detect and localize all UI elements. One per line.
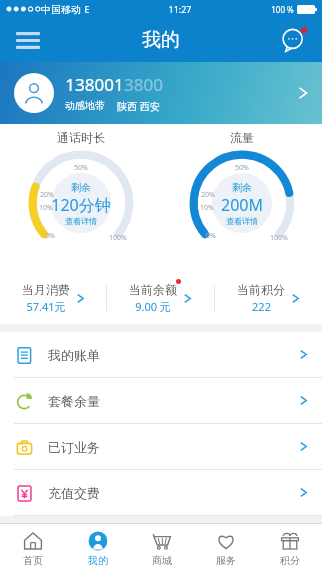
button[interactable]: Menu bbox=[8, 20, 48, 60]
staticText: 流量 bbox=[230, 130, 254, 145]
button[interactable]: 套餐余量 bbox=[0, 378, 322, 423]
staticText: 100% bbox=[270, 233, 288, 243]
button[interactable]: 积分 bbox=[258, 524, 322, 572]
staticText: 100 % bbox=[271, 4, 294, 15]
staticText: 套餐余量 bbox=[48, 393, 100, 409]
staticText: 充值交费 bbox=[48, 485, 100, 501]
staticText: 11:27 bbox=[168, 3, 192, 15]
staticText: 通话时长 bbox=[57, 130, 105, 145]
button[interactable]: 首页 bbox=[0, 524, 65, 572]
staticText: 查看详情 bbox=[65, 216, 97, 226]
button[interactable]: 服务 bbox=[194, 524, 258, 572]
staticText: 20% bbox=[40, 190, 54, 200]
staticText: 中国移动 bbox=[41, 3, 81, 16]
staticText: 57.41元 bbox=[26, 299, 66, 314]
staticText: 当前积分 bbox=[237, 282, 285, 297]
staticText: 138001 bbox=[65, 73, 124, 96]
staticText: 120分钟 bbox=[51, 194, 111, 216]
staticText: 20% bbox=[201, 190, 215, 200]
staticText: 0% bbox=[45, 231, 55, 241]
button[interactable]: 当前余额 bbox=[107, 272, 214, 324]
staticText: 商城 bbox=[152, 554, 172, 567]
staticText: E bbox=[84, 3, 90, 15]
button[interactable]: 剩余 bbox=[51, 173, 111, 233]
button[interactable]: Messages bbox=[274, 20, 314, 60]
staticText: 10% bbox=[200, 203, 214, 213]
staticText: 动感地带 bbox=[65, 99, 105, 112]
staticText: 已订业务 bbox=[48, 439, 100, 455]
staticText: 陕西 西安 bbox=[117, 99, 160, 113]
staticText: 3800 bbox=[124, 73, 163, 96]
staticText: 服务 bbox=[216, 554, 236, 567]
staticText: 查看详情 bbox=[226, 216, 258, 226]
staticText: 积分 bbox=[280, 554, 300, 567]
staticText: 222 bbox=[252, 299, 271, 314]
staticText: 200M bbox=[221, 194, 263, 216]
button[interactable]: 我的 bbox=[65, 524, 130, 572]
button[interactable]: 138001 bbox=[0, 62, 322, 124]
staticText: 我的 bbox=[88, 554, 108, 567]
button[interactable]: 当月消费 bbox=[0, 272, 106, 324]
staticText: 10% bbox=[39, 203, 53, 213]
button[interactable]: 商城 bbox=[130, 524, 194, 572]
staticText: 50% bbox=[235, 163, 249, 173]
button[interactable]: 剩余 bbox=[212, 173, 272, 233]
staticText: 9.00 元 bbox=[135, 299, 171, 314]
staticText: 当月消费 bbox=[22, 282, 70, 297]
staticText: 当前余额 bbox=[129, 282, 177, 297]
staticText: 50% bbox=[74, 163, 88, 173]
staticText: 0% bbox=[206, 231, 216, 241]
button[interactable]: 已订业务 bbox=[0, 424, 322, 469]
staticText: 100% bbox=[109, 233, 127, 243]
staticText: 首页 bbox=[23, 554, 43, 567]
staticText: 我的账单 bbox=[48, 347, 100, 363]
staticText: 我的 bbox=[142, 28, 180, 52]
button[interactable]: 当前积分 bbox=[215, 272, 322, 324]
button[interactable]: 我的账单 bbox=[0, 332, 322, 377]
staticText: 剩余 bbox=[71, 181, 91, 194]
button[interactable]: 充值交费 bbox=[0, 470, 322, 515]
staticText: 剩余 bbox=[232, 181, 252, 194]
